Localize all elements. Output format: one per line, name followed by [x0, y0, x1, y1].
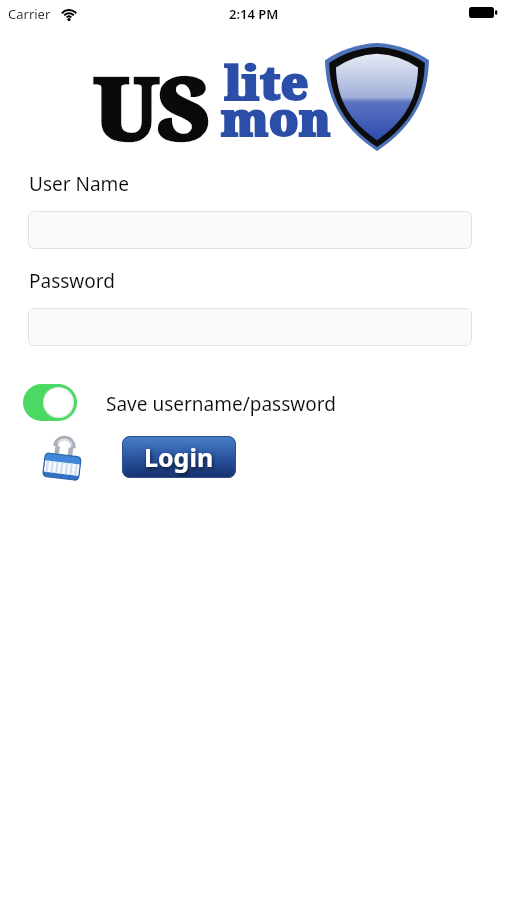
button[interactable]	[28, 308, 472, 346]
staticText: Carrier	[8, 5, 51, 23]
button[interactable]: Login	[122, 436, 236, 478]
staticText: lite	[224, 50, 309, 114]
staticText: mon	[221, 86, 331, 150]
staticText: US	[93, 47, 207, 165]
button[interactable]	[23, 384, 77, 421]
staticText: 2:14 PM	[229, 5, 279, 23]
staticText: Save username/password	[106, 391, 336, 417]
button[interactable]	[28, 211, 472, 249]
staticText: lite	[224, 50, 309, 114]
staticText: User Name	[29, 171, 130, 197]
staticText: Password	[29, 268, 115, 294]
staticText: Login	[144, 440, 214, 474]
staticText: mon	[221, 86, 331, 150]
staticText: US	[93, 47, 207, 165]
